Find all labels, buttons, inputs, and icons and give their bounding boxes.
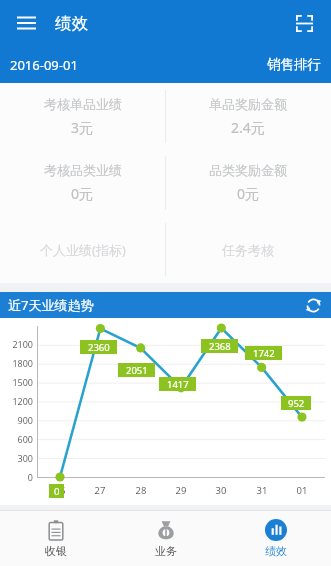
button[interactable]: 单品奖励金额 [165, 83, 331, 149]
button[interactable]: 2016-09-01 [0, 52, 84, 78]
staticText: 收银 [45, 544, 67, 558]
staticText: 2.4元 [231, 118, 265, 137]
staticText: 01 [291, 484, 313, 497]
staticText: 26 [49, 484, 71, 497]
button[interactable]: 销售排行 [261, 52, 331, 77]
staticText: 单品奖励金额 [209, 96, 287, 112]
button[interactable]: 品类奖励金额 [165, 149, 331, 216]
button[interactable]: 个人业绩(指标) [0, 216, 165, 283]
staticText: 1500 [0, 376, 33, 388]
staticText: 30 [210, 484, 232, 497]
staticText: 业务 [155, 544, 177, 558]
staticText: 1417 [167, 378, 189, 391]
button[interactable]: 考核单品业绩 [0, 83, 165, 149]
staticText: 0 [0, 471, 33, 483]
button[interactable]: 考核品类业绩 [0, 149, 165, 216]
staticText: 29 [170, 484, 192, 497]
staticText: 31 [251, 484, 273, 497]
staticText: 2051 [126, 364, 148, 377]
staticText: 1742 [253, 347, 275, 360]
staticText: 2360 [88, 341, 110, 354]
staticText: 3元 [71, 118, 94, 137]
button[interactable]: Refresh [301, 293, 325, 317]
staticText: 考核单品业绩 [44, 96, 122, 112]
staticText: 900 [0, 414, 33, 426]
staticText: 952 [288, 397, 305, 410]
button[interactable]: 收银 [0, 511, 111, 566]
staticText: 绩效 [55, 13, 88, 34]
staticText: 绩效 [265, 544, 287, 558]
staticText: 0元 [237, 184, 260, 203]
staticText: 近7天业绩趋势 [8, 296, 94, 314]
button[interactable]: 绩效 [221, 511, 331, 566]
staticText: 28 [130, 484, 152, 497]
staticText: 2100 [0, 338, 33, 350]
staticText: 1200 [0, 395, 33, 407]
staticText: 个人业绩(指标) [40, 241, 126, 259]
staticText: 1800 [0, 357, 33, 369]
staticText: 0 [54, 485, 60, 498]
staticText: 考核品类业绩 [44, 162, 122, 178]
staticText: 品类奖励金额 [209, 162, 287, 178]
staticText: 任务考核 [222, 242, 274, 258]
button[interactable]: Menu [6, 3, 46, 43]
staticText: 27 [89, 484, 111, 497]
button[interactable]: 业务 [111, 511, 221, 566]
button[interactable]: Scan [285, 4, 323, 42]
staticText: 600 [0, 433, 33, 445]
staticText: 300 [0, 452, 33, 464]
staticText: 销售排行 [267, 56, 321, 73]
staticText: 2368 [209, 340, 231, 353]
button[interactable]: 任务考核 [165, 216, 331, 283]
staticText: 0元 [71, 184, 94, 203]
staticText: 2016-09-01 [10, 56, 78, 74]
